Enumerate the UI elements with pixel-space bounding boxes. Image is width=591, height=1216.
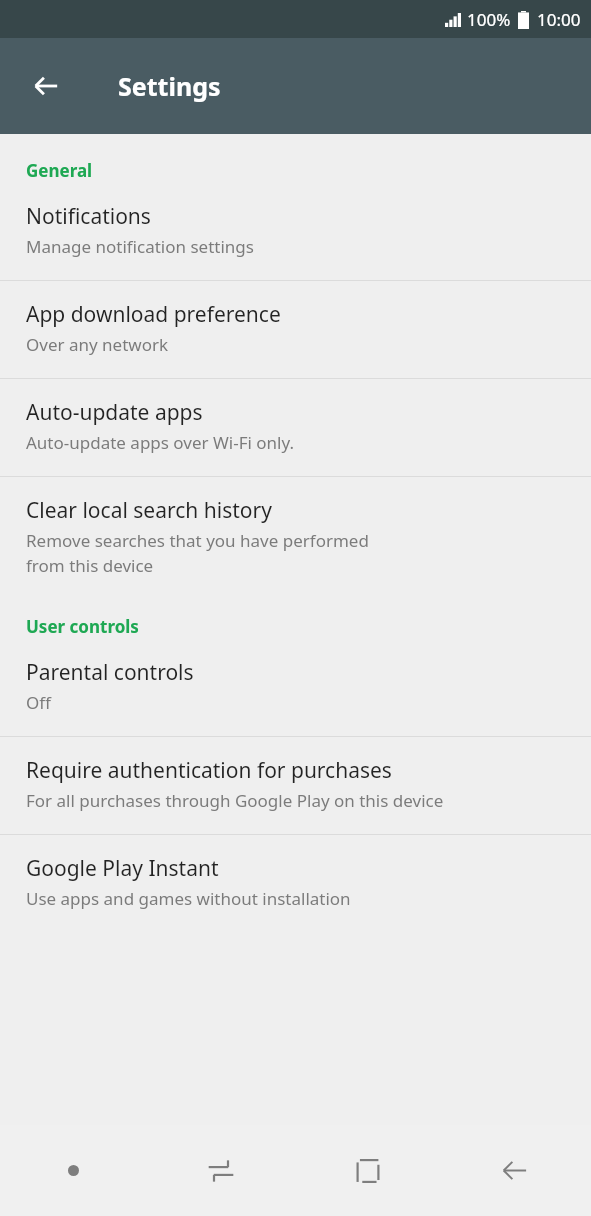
staticText: Manage notification settings: [26, 235, 254, 258]
button[interactable]: App download preference: [0, 281, 591, 378]
staticText: from this device: [26, 554, 154, 577]
button[interactable]: Back: [441, 1125, 588, 1216]
button[interactable]: Parental controls: [0, 642, 591, 736]
staticText: 10:00: [537, 8, 581, 31]
button[interactable]: Recent apps: [147, 1125, 294, 1216]
button[interactable]: Menu: [0, 1125, 147, 1216]
staticText: Use apps and games without installation: [26, 887, 351, 910]
staticText: User controls: [26, 615, 139, 638]
staticText: Settings: [118, 69, 221, 103]
button[interactable]: Notifications: [0, 186, 591, 280]
button[interactable]: Clear local search history: [0, 477, 591, 587]
button[interactable]: Google Play Instant: [0, 835, 591, 932]
staticText: Auto-update apps: [26, 398, 203, 427]
staticText: Auto-update apps over Wi-Fi only.: [26, 431, 295, 454]
staticText: Google Play Instant: [26, 854, 219, 883]
staticText: For all purchases through Google Play on…: [26, 789, 444, 812]
staticText: Notifications: [26, 202, 151, 231]
button[interactable]: Navigate up: [18, 58, 74, 114]
staticText: Off: [26, 691, 51, 714]
staticText: Require authentication for purchases: [26, 756, 392, 785]
staticText: App download preference: [26, 300, 281, 329]
staticText: Parental controls: [26, 658, 194, 687]
staticText: Remove searches that you have performed: [26, 529, 369, 552]
button[interactable]: Home: [294, 1125, 441, 1216]
staticText: Over any network: [26, 333, 169, 356]
staticText: 100%: [467, 8, 511, 31]
button[interactable]: Require authentication for purchases: [0, 737, 591, 834]
staticText: General: [26, 159, 93, 182]
button[interactable]: Auto-update apps: [0, 379, 591, 476]
staticText: Clear local search history: [26, 496, 272, 525]
